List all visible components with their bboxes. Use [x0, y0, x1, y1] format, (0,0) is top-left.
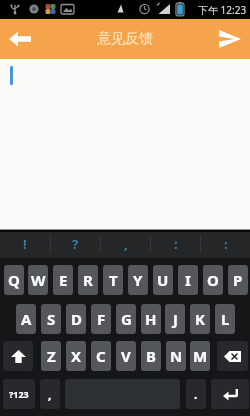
button[interactable]: U	[153, 265, 173, 295]
staticText: !	[23, 235, 27, 253]
button[interactable]: Z	[41, 341, 61, 371]
staticText: ?123	[9, 388, 29, 400]
button[interactable]: !	[0, 230, 50, 258]
button[interactable]: G	[116, 304, 136, 334]
button[interactable]: ?123	[3, 379, 35, 409]
staticText: W	[31, 270, 46, 290]
button[interactable]: W	[28, 265, 48, 295]
staticText: O	[207, 270, 219, 290]
staticText: N	[170, 346, 183, 366]
button[interactable]: S	[41, 304, 61, 334]
staticText: R	[83, 270, 93, 290]
staticText: G	[121, 309, 132, 329]
button[interactable]: O	[203, 265, 223, 295]
staticText: M	[193, 346, 208, 366]
staticText: I	[185, 270, 191, 290]
button[interactable]: V	[116, 341, 136, 371]
button[interactable]: ?	[51, 230, 100, 258]
button[interactable]: N	[166, 341, 186, 371]
staticText: X	[71, 346, 82, 366]
button[interactable]: Y	[128, 265, 148, 295]
staticText: Q	[8, 270, 20, 290]
staticText: U	[157, 270, 169, 290]
staticText: H	[145, 309, 157, 329]
button[interactable]: I	[178, 265, 198, 295]
button[interactable]: ,	[101, 230, 150, 258]
staticText: J	[173, 309, 178, 329]
staticText: S	[47, 309, 56, 329]
staticText: C	[96, 346, 106, 366]
button[interactable]: :	[201, 230, 250, 258]
button[interactable]: B	[141, 341, 161, 371]
button[interactable]: .	[186, 379, 206, 409]
button[interactable]	[214, 23, 246, 55]
button[interactable]: D	[66, 304, 86, 334]
button[interactable]: H	[141, 304, 161, 334]
staticText: E	[59, 270, 68, 290]
staticText: ,	[48, 386, 52, 402]
button[interactable]: F	[91, 304, 111, 334]
button[interactable]: T	[103, 265, 123, 295]
button[interactable]: ,	[40, 379, 60, 409]
staticText: :	[224, 235, 228, 253]
button[interactable]: Q	[4, 265, 24, 295]
staticText: .	[194, 386, 198, 402]
staticText: T	[109, 270, 118, 290]
button[interactable]: R	[78, 265, 98, 295]
staticText: V	[121, 346, 131, 366]
button[interactable]: C	[91, 341, 111, 371]
staticText: D	[71, 309, 82, 329]
button[interactable]: E	[53, 265, 73, 295]
button[interactable]: L	[215, 304, 235, 334]
staticText: 下午 12:23	[198, 3, 247, 17]
staticText: F	[97, 309, 106, 329]
staticText: ?	[72, 235, 79, 253]
staticText: 意见反馈	[97, 30, 153, 48]
staticText: Y	[133, 270, 143, 290]
staticText: :	[174, 235, 178, 253]
staticText: K	[195, 309, 205, 329]
staticText: B	[146, 346, 156, 366]
button[interactable]: K	[190, 304, 210, 334]
button[interactable]: J	[165, 304, 185, 334]
button[interactable]: M	[190, 341, 210, 371]
button[interactable]: :	[151, 230, 200, 258]
button[interactable]: A	[16, 304, 36, 334]
button[interactable]	[4, 23, 36, 55]
staticText: ,	[124, 235, 128, 253]
button[interactable]: X	[66, 341, 86, 371]
button[interactable]	[3, 341, 33, 371]
staticText: Z	[47, 346, 56, 366]
staticText: L	[221, 309, 230, 329]
button[interactable]: P	[228, 265, 248, 295]
staticText: A	[21, 309, 32, 329]
button[interactable]	[217, 341, 248, 371]
button[interactable]	[211, 379, 249, 409]
staticText: P	[233, 270, 243, 290]
